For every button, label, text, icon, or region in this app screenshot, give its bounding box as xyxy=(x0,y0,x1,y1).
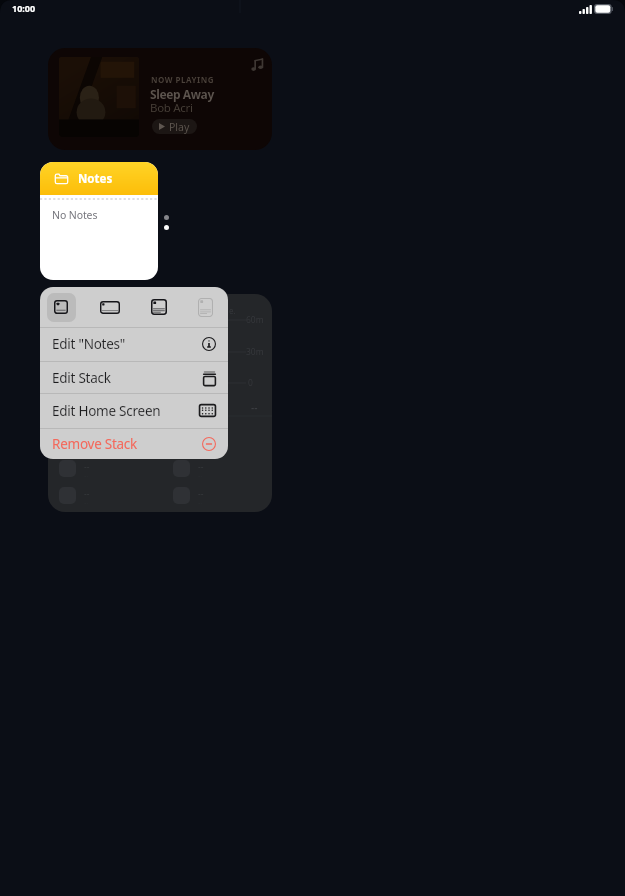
button[interactable]: Medium widget xyxy=(94,287,126,327)
button[interactable]: Play xyxy=(152,119,197,134)
staticText: Notes xyxy=(78,171,113,187)
button[interactable]: Edit Stack xyxy=(40,362,228,394)
button[interactable]: NOW PLAYING xyxy=(48,48,272,150)
staticText: Sleep Away xyxy=(150,86,214,102)
button[interactable]: Small widget xyxy=(45,287,77,327)
button[interactable]: Remove Stack xyxy=(40,429,228,459)
button[interactable]: e. xyxy=(48,294,272,512)
staticText: 0 xyxy=(248,377,253,389)
staticText: e. xyxy=(229,305,236,316)
staticText: Play xyxy=(169,120,190,134)
staticText: Edit "Notes" xyxy=(52,335,126,353)
staticText: 60m xyxy=(246,314,264,326)
staticText: 30m xyxy=(246,346,264,358)
button[interactable]: Extra large widget xyxy=(189,287,221,327)
staticText: 10:00 xyxy=(12,2,36,14)
staticText: -- xyxy=(251,400,258,414)
staticText: No Notes xyxy=(52,208,98,222)
staticText: Edit Stack xyxy=(52,369,111,387)
staticText: Bob Acri xyxy=(150,100,193,116)
staticText: Remove Stack xyxy=(52,435,138,453)
button[interactable]: Edit Home Screen xyxy=(40,394,228,427)
button[interactable]: Large widget xyxy=(143,287,175,327)
button[interactable]: Notes xyxy=(40,162,158,280)
button[interactable]: Edit "Notes" xyxy=(40,328,228,360)
staticText: NOW PLAYING xyxy=(151,74,214,85)
staticText: Edit Home Screen xyxy=(52,402,161,420)
